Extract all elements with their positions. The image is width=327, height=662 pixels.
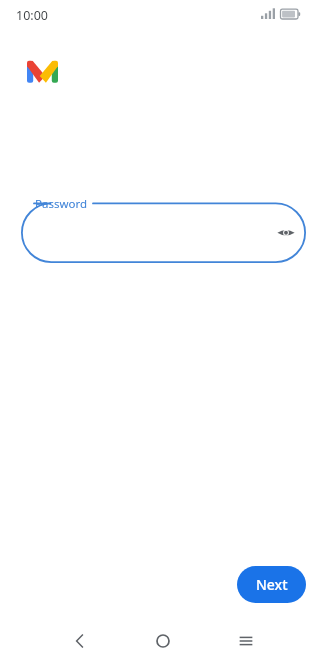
staticText: 10:00 bbox=[16, 7, 48, 24]
button[interactable]: Back bbox=[62, 623, 98, 659]
button[interactable]: Password bbox=[21, 196, 306, 263]
staticText: Password bbox=[35, 196, 88, 212]
staticText: Next bbox=[256, 575, 288, 594]
button[interactable]: Recent apps bbox=[228, 623, 264, 659]
button[interactable]: Next bbox=[237, 566, 306, 603]
button[interactable]: Home bbox=[145, 623, 181, 659]
